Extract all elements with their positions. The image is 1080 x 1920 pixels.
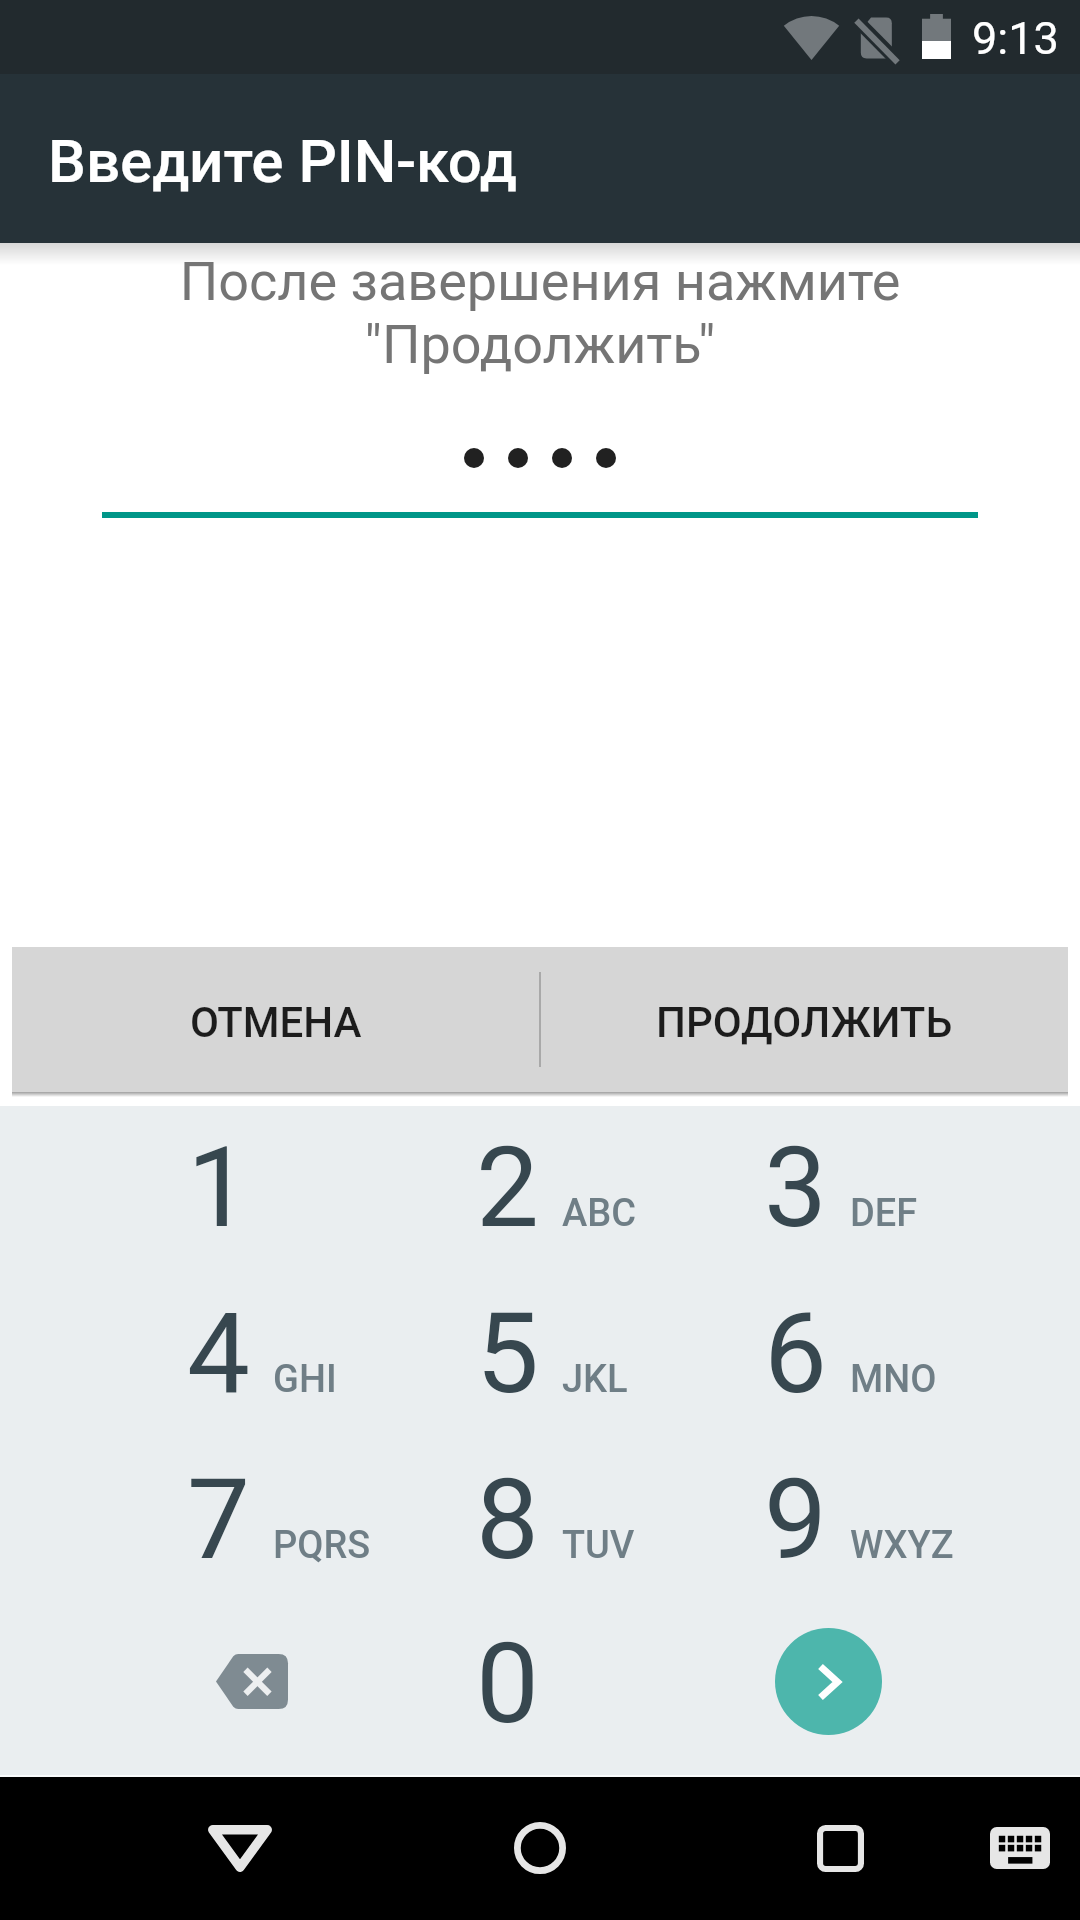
button[interactable]: 3 <box>690 1104 978 1270</box>
staticText: Введите PIN-код <box>48 126 517 196</box>
button[interactable]: 9 <box>690 1436 978 1602</box>
staticText: 5 <box>476 1288 539 1419</box>
button[interactable]: Next <box>775 1628 882 1735</box>
button[interactable]: Switch keyboard <box>950 1777 1080 1919</box>
staticText: 4 <box>187 1288 250 1419</box>
staticText: 7 <box>187 1454 250 1585</box>
button[interactable]: PIN entry field <box>102 420 978 518</box>
button[interactable]: 7 <box>113 1436 401 1602</box>
button[interactable]: 6 <box>690 1270 978 1436</box>
staticText: TUV <box>562 1523 635 1568</box>
staticText: PQRS <box>273 1523 371 1568</box>
staticText: MNO <box>850 1357 937 1402</box>
button[interactable]: 0 <box>402 1600 690 1766</box>
staticText: 9:13 <box>972 12 1059 65</box>
button[interactable]: 8 <box>402 1436 690 1602</box>
button[interactable]: ОТМЕНА <box>12 947 540 1092</box>
staticText: 9 <box>764 1454 827 1585</box>
staticText: ОТМЕНА <box>190 998 362 1047</box>
button[interactable]: Back <box>170 1777 310 1919</box>
staticText: 8 <box>476 1454 539 1585</box>
button[interactable]: 1 <box>113 1104 401 1270</box>
button[interactable]: Delete <box>108 1598 396 1764</box>
staticText: 1 <box>187 1122 250 1253</box>
staticText: JKL <box>562 1357 628 1402</box>
button[interactable]: 2 <box>402 1104 690 1270</box>
staticText: ABC <box>562 1191 637 1236</box>
staticText: 3 <box>764 1122 827 1253</box>
button[interactable]: Home <box>470 1777 610 1919</box>
staticText: GHI <box>273 1357 337 1402</box>
button[interactable]: Recent apps <box>770 1777 910 1919</box>
staticText: После завершения нажмите "Продолжить" <box>0 250 1080 376</box>
staticText: DEF <box>850 1191 918 1236</box>
button[interactable]: ПРОДОЛЖИТЬ <box>540 947 1068 1092</box>
button[interactable]: 4 <box>113 1270 401 1436</box>
button[interactable]: 5 <box>402 1270 690 1436</box>
staticText: 0 <box>476 1618 539 1749</box>
staticText: 2 <box>476 1122 539 1253</box>
staticText: ПРОДОЛЖИТЬ <box>656 998 953 1047</box>
staticText: 6 <box>764 1288 827 1419</box>
staticText: WXYZ <box>850 1523 954 1568</box>
